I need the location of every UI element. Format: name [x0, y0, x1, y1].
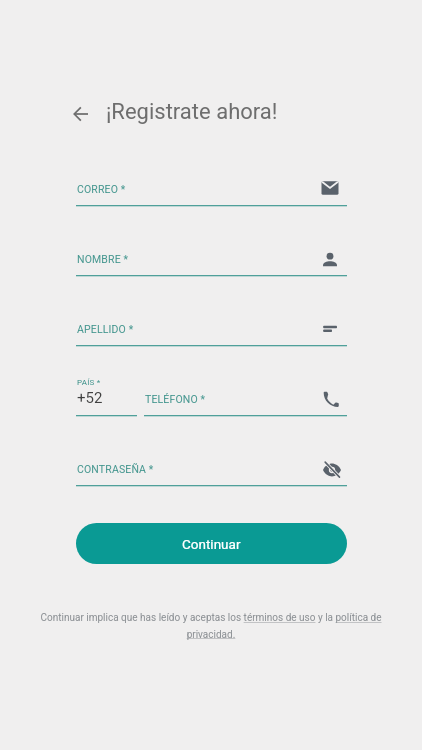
- staticText: APELLIDO *: [77, 323, 134, 335]
- button[interactable]: Name: [317, 245, 343, 271]
- button[interactable]: Last name: [317, 315, 343, 341]
- button[interactable]: APELLIDO *: [76, 316, 347, 346]
- button[interactable]: Email: [317, 175, 343, 201]
- button[interactable]: Show password: [317, 455, 343, 481]
- button[interactable]: Continuar implica que has leído y acepta…: [36, 612, 386, 640]
- button[interactable]: CONTRASEÑA *: [76, 456, 347, 486]
- staticText: NOMBRE *: [77, 253, 129, 265]
- button[interactable]: Continuar: [76, 523, 347, 564]
- staticText: Continuar: [182, 536, 241, 552]
- staticText: TELÉFONO *: [145, 393, 206, 405]
- button[interactable]: Phone: [317, 383, 343, 409]
- staticText: ¡Registrate ahora!: [106, 99, 278, 125]
- staticText: +52: [77, 389, 103, 407]
- button[interactable]: NOMBRE *: [76, 246, 347, 276]
- staticText: PAÍS *: [77, 378, 101, 387]
- button[interactable]: CORREO *: [76, 176, 347, 206]
- staticText: CORREO *: [77, 183, 126, 195]
- button[interactable]: PAÍS *: [76, 376, 137, 416]
- button[interactable]: TELÉFONO *: [144, 384, 347, 416]
- button[interactable]: Back: [67, 100, 95, 128]
- staticText: CONTRASEÑA *: [77, 463, 154, 475]
